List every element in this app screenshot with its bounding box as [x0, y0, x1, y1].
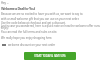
- button[interactable]: START TODAY & SAVE 50%: [24, 52, 76, 60]
- staticText: with a small welcome gift that you can u…: [1, 17, 80, 21]
- staticText: Enjoy!: [1, 26, 9, 30]
- staticText: welcome discount on your next order: [8, 43, 56, 47]
- staticText: Because we are so excited to have you wi…: [1, 12, 83, 16]
- staticText: Use the code below at checkout and get a…: [1, 21, 66, 25]
- staticText: You can read the full terms and rules on…: [1, 30, 58, 34]
- staticText: We really hope you enjoy shopping here.: [1, 36, 53, 40]
- staticText: Welcome a Deal for You!: [1, 6, 35, 11]
- staticText: START TODAY & SAVE 50%: [34, 54, 66, 58]
- staticText: Just in case you wondered, here is a qui…: [1, 24, 100, 28]
- staticText: Hey ...: [1, 1, 9, 5]
